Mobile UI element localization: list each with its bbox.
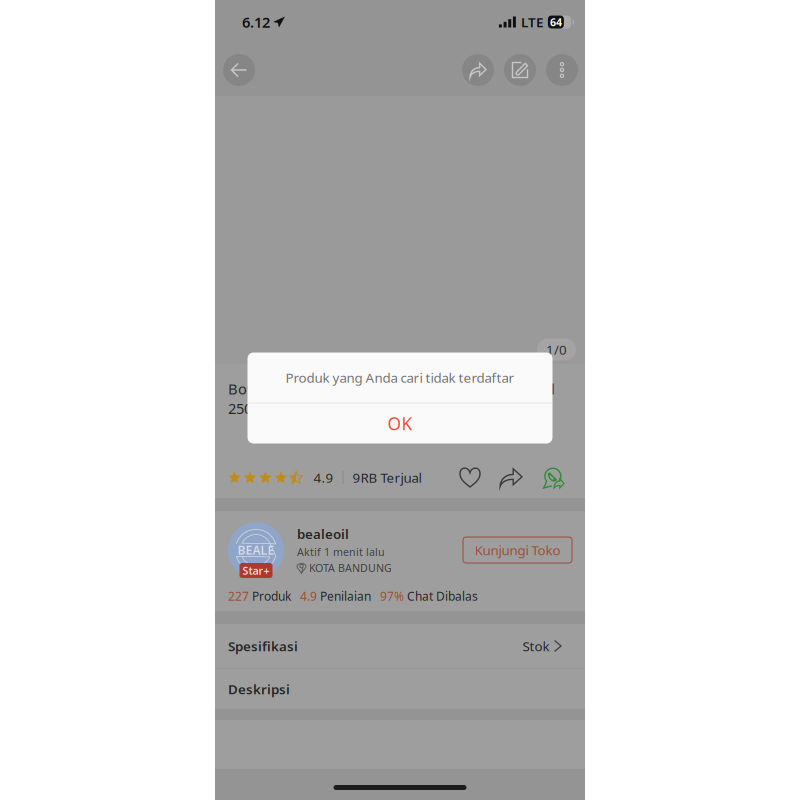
staticText: 6.12 xyxy=(242,12,270,32)
staticText: 227 xyxy=(228,588,249,604)
staticText: LTE xyxy=(521,13,543,31)
staticText: OK xyxy=(387,412,412,435)
button[interactable]: Deskripsi xyxy=(215,669,585,709)
button[interactable]: Edit xyxy=(504,54,536,86)
staticText: KOTA BANDUNG xyxy=(309,561,392,575)
staticText: Produk yang Anda cari tidak terdaftar xyxy=(285,369,514,386)
button[interactable]: Spesifikasi xyxy=(215,624,585,668)
button[interactable]: Kunjungi Toko xyxy=(463,537,572,563)
button[interactable]: Add to wishlist xyxy=(450,461,490,494)
button[interactable]: Back xyxy=(223,54,255,86)
staticText: Chat Dibalas xyxy=(404,588,478,604)
staticText: 64 xyxy=(550,15,562,29)
staticText: Botol Spray 60ml Pump 30ml Transparan 10… xyxy=(228,379,555,418)
staticText: Deskripsi xyxy=(228,680,290,698)
staticText: 4.9 xyxy=(291,588,317,604)
staticText: 97% xyxy=(371,588,404,604)
staticText: bealeoil xyxy=(297,525,349,543)
staticText: BEALE xyxy=(237,542,274,558)
staticText: 4.9 xyxy=(314,469,334,486)
button[interactable]: Chat on WhatsApp xyxy=(532,460,572,495)
staticText: Stok xyxy=(522,637,549,655)
button[interactable]: Share product xyxy=(490,461,532,493)
staticText: 9RB Terjual xyxy=(353,469,422,486)
staticText: 1/0 xyxy=(546,341,567,358)
staticText: Aktif 1 menit lalu xyxy=(297,545,385,559)
staticText: Star+ xyxy=(242,563,269,578)
button[interactable]: More options xyxy=(546,54,578,86)
button[interactable]: OK xyxy=(247,403,552,443)
staticText: Spesifikasi xyxy=(228,637,298,655)
staticText: Kunjungi Toko xyxy=(474,541,560,559)
staticText: Produk xyxy=(249,588,291,604)
button[interactable]: Share xyxy=(462,54,494,86)
staticText: Penilaian xyxy=(317,588,371,604)
